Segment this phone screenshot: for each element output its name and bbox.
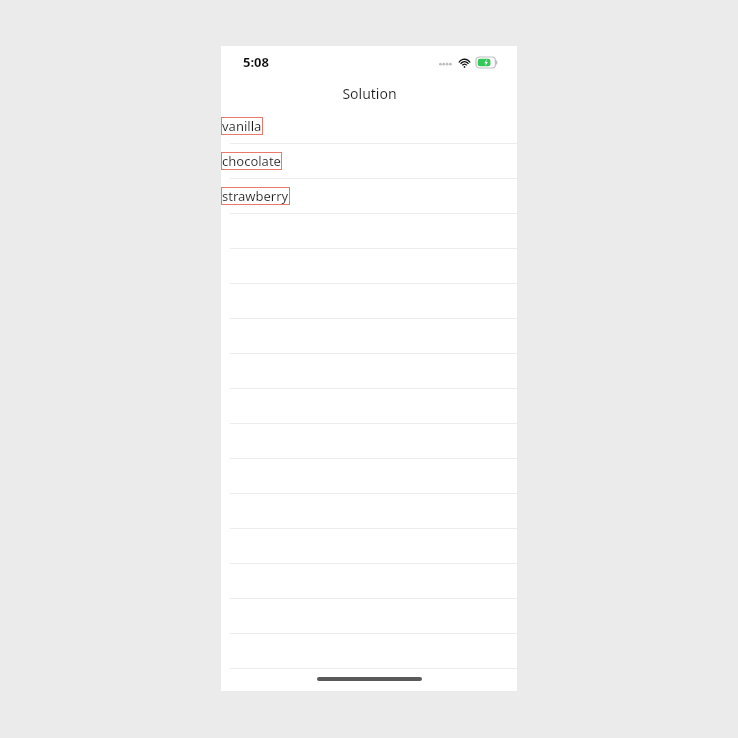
button[interactable]: vanilla [221,109,517,144]
button[interactable]: strawberry [221,179,517,214]
button[interactable]: chocolate [221,144,517,179]
staticText: chocolate [222,152,281,170]
staticText: vanilla [222,117,262,135]
staticText: Solution [342,84,397,103]
staticText: 5:08 [243,53,269,71]
staticText: strawberry [222,187,289,205]
other: Home indicator [317,677,422,681]
